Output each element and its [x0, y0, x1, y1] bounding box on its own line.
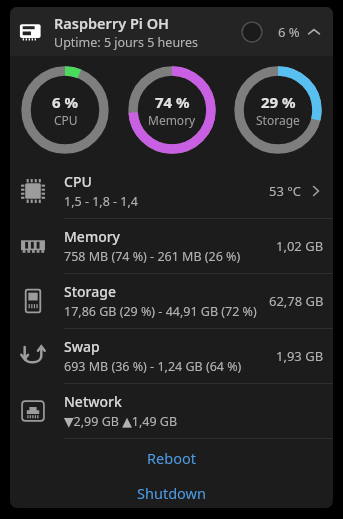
button[interactable]: 74 %: [124, 62, 220, 158]
staticText: 62,78 GB: [269, 292, 324, 310]
staticText: CPU: [54, 112, 78, 128]
staticText: 74 %: [155, 92, 190, 112]
staticText: 17,86 GB (29 %) - 44,91 GB (72 %): [64, 303, 257, 320]
staticText: Memory: [148, 112, 196, 128]
staticText: 6 %: [52, 92, 79, 112]
button[interactable]: Shutdown: [10, 477, 333, 508]
staticText: Memory: [64, 227, 121, 246]
button[interactable]: 29 %: [230, 62, 326, 158]
button[interactable]: Raspberry Pi OH: [10, 7, 333, 56]
staticText: Reboot: [147, 448, 196, 468]
staticText: 1,93 GB: [276, 347, 324, 365]
staticText: 6 %: [278, 23, 300, 41]
staticText: CPU: [64, 172, 92, 191]
button[interactable]: Memory: [10, 219, 333, 273]
staticText: Shutdown: [137, 483, 206, 503]
staticText: Swap: [64, 337, 100, 356]
staticText: 1,5 - 1,8 - 1,4: [64, 193, 139, 210]
staticText: Storage: [64, 282, 116, 301]
staticText: 53 °C: [269, 182, 302, 200]
staticText: 29 %: [261, 92, 296, 112]
button[interactable]: Status indicator: [241, 21, 263, 43]
button[interactable]: Storage: [10, 274, 333, 328]
button[interactable]: CPU: [10, 164, 333, 218]
staticText: ▼2,99 GB ▲1,49 GB: [64, 413, 178, 430]
button[interactable]: Network: [10, 384, 333, 438]
button[interactable]: 6 %: [17, 62, 113, 158]
staticText: 1,02 GB: [276, 237, 324, 255]
staticText: Raspberry Pi OH: [54, 13, 170, 33]
button[interactable]: Reboot: [10, 439, 333, 477]
button[interactable]: Swap: [10, 329, 333, 383]
staticText: Storage: [256, 112, 300, 128]
staticText: 693 MB (36 %) - 1,24 GB (64 %): [64, 358, 242, 375]
button[interactable]: Collapse: [305, 23, 323, 41]
staticText: Network: [64, 392, 122, 411]
staticText: 758 MB (74 %) - 261 MB (26 %): [64, 248, 241, 265]
staticText: Uptime: 5 jours 5 heures: [54, 34, 199, 51]
